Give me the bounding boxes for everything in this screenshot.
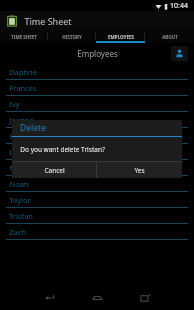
staticText: Kevin: [9, 131, 29, 141]
button[interactable]: Add employee: [171, 46, 188, 61]
staticText: TIME SHEET: [11, 34, 37, 40]
staticText: EMPLOYEES: [108, 34, 134, 40]
button[interactable]: ABOUT: [145, 30, 194, 43]
button[interactable]: Daphne: [0, 64, 194, 80]
button[interactable]: Tristan: [0, 208, 194, 224]
staticText: 10:44: [170, 1, 188, 11]
button[interactable]: Home: [73, 284, 121, 310]
staticText: Tristan: [9, 211, 33, 221]
button[interactable]: Kevin: [0, 128, 194, 144]
staticText: Maria: [9, 163, 30, 173]
button[interactable]: Joanna: [0, 112, 194, 128]
button[interactable]: Cancel: [12, 162, 96, 178]
staticText: Joanna: [9, 115, 34, 125]
staticText: Yes: [134, 166, 145, 175]
button[interactable]: EMPLOYEES: [96, 30, 145, 43]
staticText: ABOUT: [162, 34, 178, 40]
staticText: Taylor: [9, 195, 31, 205]
staticText: Liam: [9, 147, 27, 157]
staticText: HISTORY: [62, 34, 82, 40]
button[interactable]: Maria: [0, 160, 194, 176]
staticText: Ivy: [9, 99, 20, 109]
button[interactable]: Zach: [0, 224, 194, 240]
staticText: Employees: [77, 48, 118, 59]
staticText: Zach: [9, 227, 26, 237]
staticText: Time Sheet: [24, 15, 72, 27]
staticText: Cancel: [44, 166, 65, 175]
staticText: Daphne: [9, 67, 37, 77]
button[interactable]: TIME SHEET: [0, 30, 48, 43]
button[interactable]: Noah: [0, 176, 194, 192]
button[interactable]: Taylor: [0, 192, 194, 208]
button[interactable]: HISTORY: [48, 30, 96, 43]
button[interactable]: Yes: [97, 162, 182, 178]
staticText: Delete: [20, 122, 46, 134]
staticText: Do you want delete Tristan?: [20, 145, 105, 154]
button[interactable]: Liam: [0, 144, 194, 160]
button[interactable]: Recent apps: [121, 284, 169, 310]
button[interactable]: Ivy: [0, 96, 194, 112]
staticText: Noah: [9, 179, 29, 189]
button[interactable]: Frances: [0, 80, 194, 96]
staticText: Frances: [9, 83, 37, 93]
button[interactable]: Back: [25, 284, 73, 310]
